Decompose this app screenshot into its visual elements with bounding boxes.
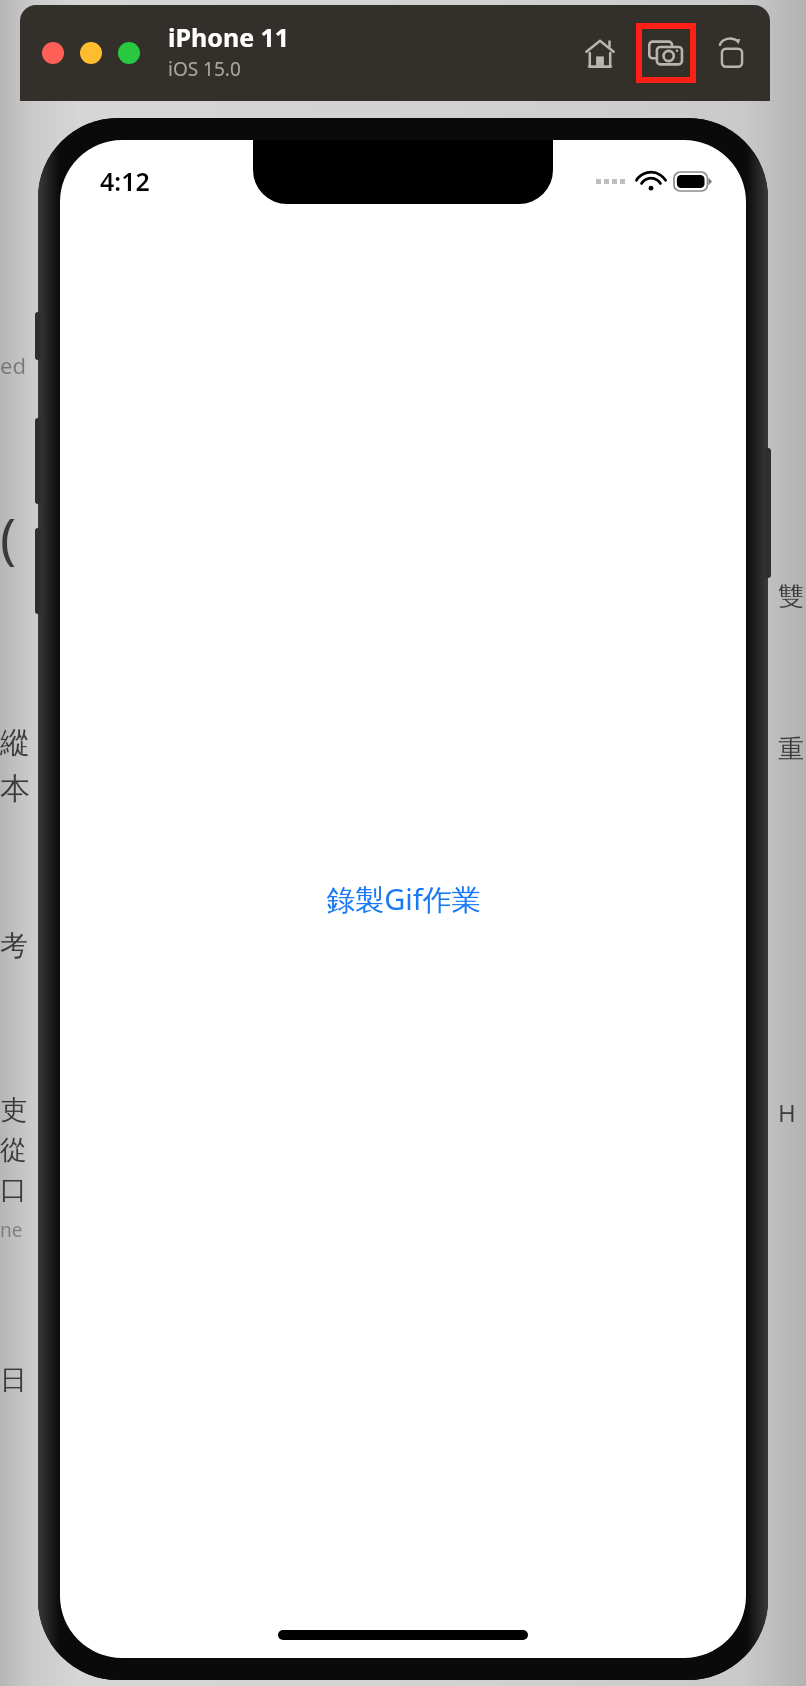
staticText: 4:12 xyxy=(100,164,150,198)
button[interactable]: Home xyxy=(574,27,626,79)
staticText: H xyxy=(778,1096,796,1129)
staticText: 重 xyxy=(778,733,804,766)
button[interactable]: Screenshot xyxy=(642,29,690,77)
button[interactable]: Minimize xyxy=(80,42,102,64)
staticText: 雙 xyxy=(778,580,804,613)
button[interactable]: 錄製Gif作業 xyxy=(326,879,481,919)
staticText: ne xyxy=(0,1217,23,1243)
staticText: ( xyxy=(0,500,17,574)
button[interactable]: Close xyxy=(42,42,64,64)
staticText: iOS 15.0 xyxy=(168,56,241,82)
button[interactable]: Rotate xyxy=(706,27,758,79)
staticText: ed xyxy=(0,350,26,380)
staticText: iPhone 11 xyxy=(168,20,290,54)
staticText: 考 xyxy=(0,928,28,963)
staticText: 縱 本 xyxy=(0,724,30,808)
button[interactable]: Maximize xyxy=(118,42,140,64)
staticText: 吏 從 口 xyxy=(0,1093,27,1207)
staticText: 日 xyxy=(0,1363,27,1397)
